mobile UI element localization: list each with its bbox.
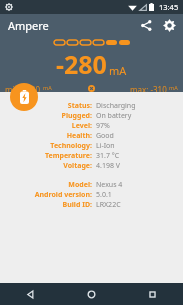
staticText: LRX22C [96, 200, 121, 210]
staticText: 13:45 [159, 2, 179, 12]
staticText: Level: [71, 121, 92, 131]
staticText: On battery [96, 111, 132, 121]
staticText: Li-Ion [96, 141, 115, 151]
staticText: Plugged: [61, 111, 92, 121]
staticText: Discharging [96, 101, 136, 111]
button[interactable]: Home [61, 283, 122, 305]
staticText: Health: [66, 131, 92, 141]
staticText: 5.0.1 [96, 190, 112, 200]
button[interactable]: Battery status [10, 83, 38, 111]
staticText: Good [96, 131, 114, 141]
staticText: Build ID: [62, 200, 92, 210]
staticText: Model: [68, 180, 92, 190]
staticText: Technology: [50, 141, 92, 151]
staticText: Ampere [8, 18, 49, 33]
staticText: Nexus 4 [96, 180, 123, 190]
staticText: Android version: [34, 190, 92, 200]
staticText: mA [109, 63, 127, 78]
staticText: 97% [96, 121, 110, 131]
staticText: Temperature: [44, 151, 92, 161]
staticText: min: -280 [5, 84, 43, 92]
button[interactable]: Back [0, 283, 61, 305]
staticText: max: -310 [130, 84, 169, 92]
staticText: Status: [67, 101, 92, 111]
button[interactable]: Settings [161, 17, 178, 34]
staticText: mA [43, 84, 52, 91]
staticText: 4.198 V [96, 161, 120, 171]
staticText: mA [169, 84, 178, 91]
staticText: Voltage: [63, 161, 92, 171]
button[interactable]: Share [138, 17, 155, 34]
staticText: -280 [56, 47, 107, 81]
staticText: 31.7 °C [96, 151, 120, 161]
button[interactable]: Recent apps [122, 283, 183, 305]
button[interactable]: Reset minimum and maximum [84, 84, 98, 92]
